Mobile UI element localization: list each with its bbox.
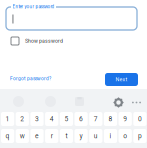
button[interactable]: 1: [1, 112, 14, 126]
staticText: w: [20, 132, 25, 140]
staticText: r: [51, 132, 53, 140]
staticText: Enter your password: [12, 4, 54, 9]
button[interactable]: Next: [105, 73, 138, 86]
button[interactable]: t: [60, 129, 73, 143]
button[interactable]: 4: [45, 112, 58, 126]
staticText: 8: [108, 115, 112, 123]
button[interactable]: 3: [30, 112, 44, 126]
button[interactable]: o: [119, 129, 132, 143]
staticText: p: [138, 132, 142, 140]
button[interactable]: 7: [89, 112, 102, 126]
staticText: u: [94, 132, 98, 140]
staticText: 6: [79, 115, 83, 123]
staticText: 2: [20, 115, 24, 123]
button[interactable]: w: [16, 129, 29, 143]
button[interactable]: 9: [119, 112, 132, 126]
staticText: 7: [94, 115, 98, 123]
button[interactable]: 5: [60, 112, 73, 126]
staticText: Forgot password?: [10, 76, 51, 81]
button[interactable]: 0: [133, 112, 146, 126]
staticText: 9: [123, 115, 127, 123]
staticText: 3: [35, 115, 39, 123]
button[interactable]: 2: [16, 112, 29, 126]
button[interactable]: 8: [104, 112, 117, 126]
staticText: 0: [138, 115, 142, 123]
button[interactable]: More options: [131, 97, 142, 108]
button[interactable]: p: [133, 129, 146, 143]
staticText: i: [109, 132, 111, 140]
staticText: q: [6, 132, 10, 140]
button[interactable]: i: [104, 129, 117, 143]
button[interactable]: 6: [74, 112, 88, 126]
staticText: Next: [115, 76, 127, 83]
staticText: t: [65, 132, 67, 140]
button[interactable]: Settings: [113, 97, 124, 108]
button[interactable]: Clipboard: [74, 96, 85, 107]
button[interactable]: r: [45, 129, 58, 143]
staticText: Show password: [25, 38, 63, 44]
button[interactable]: Show password: [11, 36, 131, 46]
staticText: e: [35, 132, 39, 140]
button[interactable]: q: [1, 129, 14, 143]
staticText: y: [80, 132, 83, 140]
button[interactable]: y: [74, 129, 88, 143]
staticText: 5: [64, 115, 68, 123]
button[interactable]: u: [89, 129, 102, 143]
staticText: o: [123, 132, 127, 140]
staticText: 1: [6, 115, 10, 123]
button[interactable]: e: [30, 129, 44, 143]
staticText: 4: [50, 115, 54, 123]
button[interactable]: Forgot password?: [10, 74, 58, 83]
